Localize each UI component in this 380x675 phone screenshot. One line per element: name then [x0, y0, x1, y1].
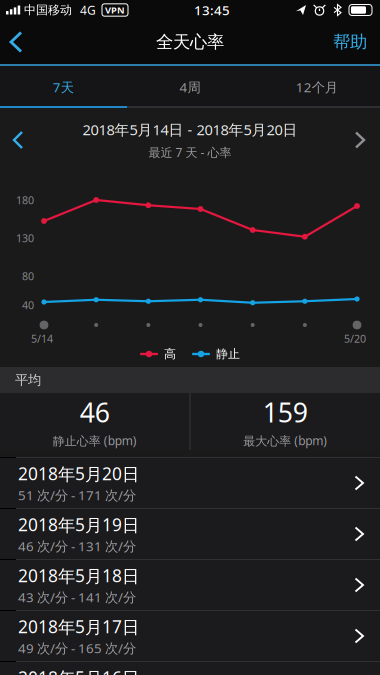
- button[interactable]: 2018年5月19日: [0, 508, 380, 559]
- staticText: 2018年5月20日: [18, 462, 139, 485]
- button[interactable]: 2018年5月16日: [0, 661, 380, 675]
- staticText: 46: [80, 394, 110, 430]
- staticText: VPN: [105, 4, 125, 16]
- staticText: 2018年5月18日: [18, 564, 139, 587]
- staticText: 5/14: [31, 331, 53, 346]
- staticText: 180: [16, 193, 34, 207]
- staticText: 13:45: [194, 1, 230, 19]
- staticText: 159: [263, 394, 308, 430]
- staticText: 2018年5月19日: [18, 513, 139, 536]
- staticText: 高: [164, 347, 176, 361]
- button[interactable]: 上一周: [0, 120, 38, 160]
- staticText: 4周: [179, 78, 200, 96]
- staticText: 中国移动: [24, 3, 72, 17]
- button[interactable]: 2018年5月17日: [0, 610, 380, 661]
- button[interactable]: 返回: [0, 20, 37, 63]
- button[interactable]: 下一周: [340, 120, 380, 159]
- staticText: 40: [22, 298, 34, 312]
- staticText: 最近 7 天 - 心率: [148, 144, 231, 160]
- staticText: 2018年5月17日: [18, 615, 139, 638]
- button[interactable]: 12个月: [253, 66, 380, 108]
- staticText: 7天: [53, 78, 74, 96]
- staticText: 2018年5月16日: [18, 666, 139, 675]
- button[interactable]: 帮助: [317, 19, 380, 65]
- staticText: 46 次/分 - 131 次/分: [18, 537, 136, 555]
- staticText: 静止心率 (bpm): [53, 433, 137, 449]
- button[interactable]: 2018年5月20日: [0, 457, 380, 508]
- staticText: 130: [16, 231, 34, 245]
- staticText: 43 次/分 - 141 次/分: [18, 588, 136, 606]
- staticText: 80: [22, 269, 34, 283]
- staticText: 静止: [216, 347, 240, 361]
- staticText: 平均: [15, 372, 41, 388]
- staticText: 2018年5月14日 - 2018年5月20日: [82, 120, 297, 139]
- staticText: 最大心率 (bpm): [243, 433, 327, 449]
- staticText: 4G: [80, 2, 96, 18]
- button[interactable]: 4周: [127, 66, 253, 108]
- staticText: 51 次/分 - 171 次/分: [18, 486, 136, 504]
- staticText: 全天心率: [156, 31, 224, 53]
- button[interactable]: 2018年5月18日: [0, 559, 380, 610]
- button[interactable]: 7天: [0, 66, 127, 108]
- staticText: 帮助: [333, 31, 367, 53]
- staticText: 12个月: [296, 78, 338, 96]
- staticText: 5/20: [344, 331, 366, 346]
- staticText: 49 次/分 - 165 次/分: [18, 639, 136, 657]
